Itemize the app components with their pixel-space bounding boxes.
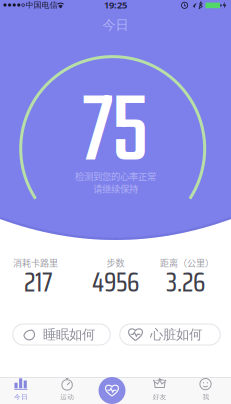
- button[interactable]: 心率测量: [90, 377, 137, 404]
- staticText: 我: [202, 393, 209, 401]
- staticText: 中国电信: [25, 0, 57, 10]
- staticText: 心脏如何: [150, 326, 202, 343]
- staticText: 运动: [60, 393, 74, 401]
- staticText: 4956: [92, 262, 139, 303]
- staticText: 消耗卡路里: [13, 256, 58, 269]
- staticText: 今日: [14, 393, 28, 401]
- staticText: 75: [83, 62, 148, 208]
- button[interactable]: 好友: [137, 377, 183, 404]
- staticText: 检测到您的心率正常: [75, 169, 156, 183]
- staticText: 请继续保持: [93, 182, 138, 195]
- staticText: 217: [24, 262, 53, 303]
- staticText: 今日: [102, 17, 128, 33]
- staticText: 19:25: [104, 0, 127, 11]
- button[interactable]: 今日: [0, 377, 44, 404]
- staticText: 距离（公里）: [160, 256, 214, 269]
- button[interactable]: 心脏如何: [120, 324, 220, 345]
- staticText: 好友: [153, 393, 167, 401]
- button[interactable]: 运动: [44, 377, 90, 404]
- staticText: 步数: [106, 256, 124, 269]
- button[interactable]: 睡眠如何: [13, 324, 110, 345]
- button[interactable]: 我: [183, 377, 229, 404]
- staticText: 3.26: [166, 262, 205, 303]
- staticText: 睡眠如何: [43, 326, 95, 343]
